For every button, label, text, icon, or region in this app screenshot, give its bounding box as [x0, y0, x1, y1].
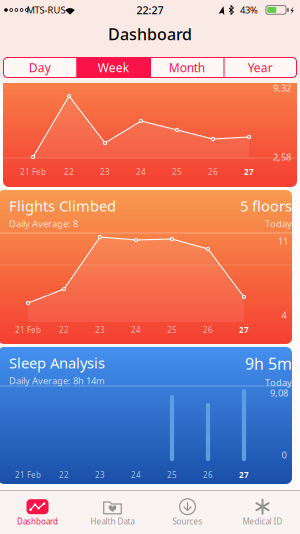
staticText: 26 [208, 167, 218, 177]
staticText: 25 [167, 325, 177, 335]
staticText: 27 [239, 470, 249, 480]
staticText: Today [265, 376, 292, 389]
staticText: 23 [100, 167, 110, 177]
staticText: Daily Average: 8 [9, 217, 78, 230]
staticText: 22 [59, 325, 69, 335]
button[interactable]: Sources [150, 492, 225, 534]
button[interactable]: Day [3, 57, 76, 78]
staticText: Month [169, 59, 205, 75]
staticText: 23 [95, 325, 105, 335]
staticText: 4 [281, 309, 286, 321]
staticText: 23 [95, 470, 105, 480]
staticText: 43% [240, 4, 258, 16]
staticText: 25 [172, 167, 182, 177]
staticText: 25 [167, 470, 177, 480]
staticText: 24 [131, 325, 141, 335]
button[interactable]: Flights Climbed [3, 190, 297, 344]
staticText: 21 Feb [15, 325, 41, 335]
staticText: Sleep Analysis [9, 353, 105, 372]
staticText: Dashboard [108, 23, 192, 45]
button[interactable]: Year [223, 57, 297, 78]
button[interactable]: Dashboard [0, 492, 75, 534]
staticText: 22:27 [136, 3, 163, 17]
staticText: 9h 5m [245, 353, 292, 374]
staticText: 24 [131, 470, 141, 480]
button[interactable]: Month [150, 57, 223, 78]
staticText: Sources [172, 516, 202, 527]
staticText: Today [265, 217, 292, 230]
staticText: Health Data [90, 516, 134, 527]
staticText: Dashboard [17, 516, 58, 527]
staticText: 11 [278, 235, 288, 247]
staticText: 22 [59, 470, 69, 480]
staticText: 2,58 [273, 151, 291, 163]
staticText: 0 [281, 449, 286, 461]
staticText: Year [248, 59, 273, 75]
staticText: 26 [203, 325, 213, 335]
staticText: 9,08 [270, 387, 288, 399]
staticText: 9,32 [273, 82, 291, 94]
button[interactable]: Week [76, 57, 150, 78]
staticText: Daily Average: 8h 14m [9, 374, 105, 387]
staticText: 27 [244, 167, 254, 177]
button[interactable]: Steps chart [3, 83, 297, 187]
staticText: 5 floors [240, 196, 292, 215]
staticText: 27 [239, 325, 249, 335]
staticText: 22 [64, 167, 74, 177]
staticText: 21 Feb [15, 470, 41, 480]
staticText: 26 [203, 470, 213, 480]
staticText: Medical ID [242, 516, 282, 527]
staticText: 24 [136, 167, 146, 177]
button[interactable]: Sleep Analysis [3, 347, 297, 484]
staticText: 21 Feb [20, 167, 46, 177]
button[interactable]: Medical ID [225, 492, 300, 534]
staticText: Day [29, 59, 51, 75]
button[interactable]: Health Data [75, 492, 150, 534]
staticText: Week [98, 59, 129, 75]
staticText: Flights Climbed [9, 196, 116, 215]
staticText: MTS-RUS [26, 4, 65, 16]
